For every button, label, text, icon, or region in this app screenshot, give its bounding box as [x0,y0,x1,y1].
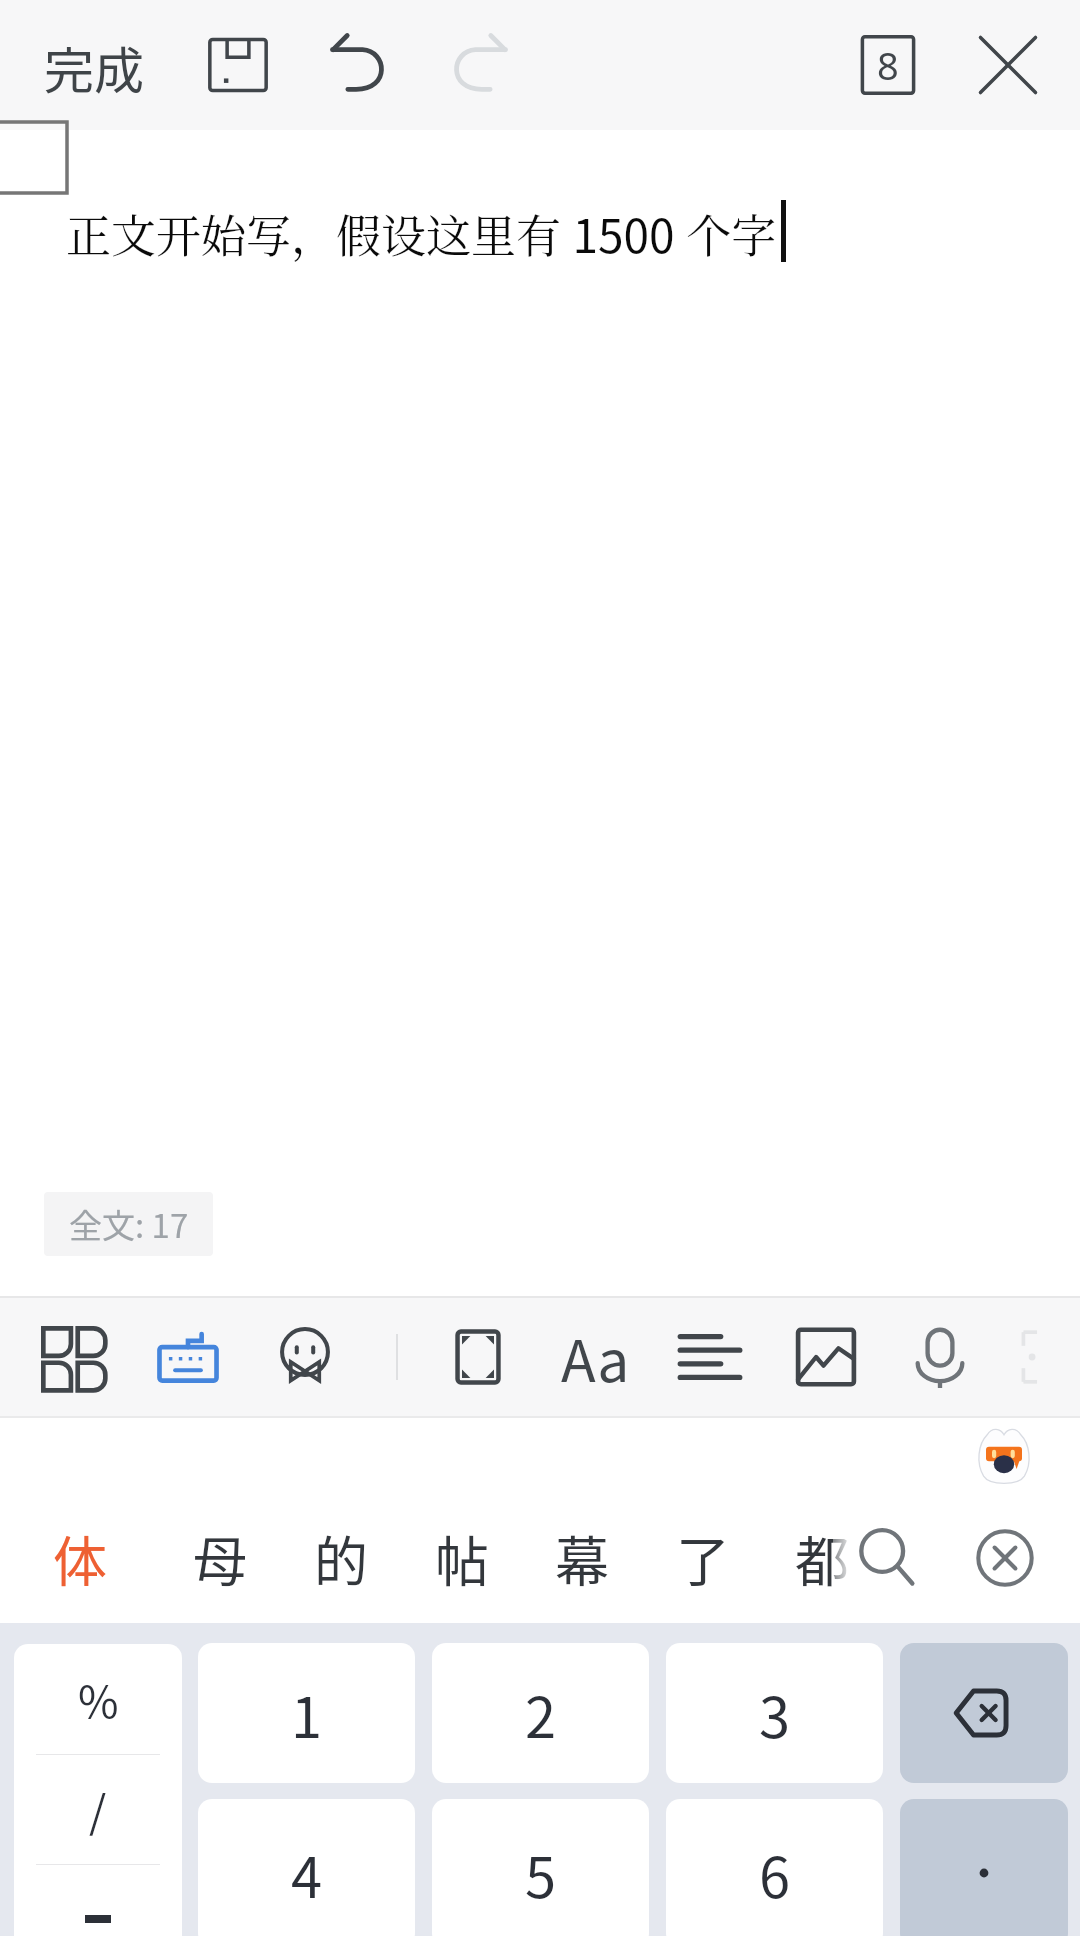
button[interactable]: 母 [160,1498,280,1618]
button[interactable]: Undo [314,0,406,130]
staticText: 了 [676,1519,730,1597]
staticText: 3 [759,1673,791,1754]
button[interactable]: Save [192,0,284,130]
staticText: 5 [525,1833,557,1914]
button[interactable]: 全文: 17 [44,1192,213,1256]
button[interactable]: Panels [14,1298,130,1416]
button[interactable]: Document body [0,130,1080,1296]
staticText: 8 [877,39,899,91]
button[interactable]: 5 [432,1799,649,1936]
staticText: 2 [525,1673,557,1754]
staticText: 6 [759,1833,791,1914]
button[interactable]: Search [833,1498,943,1618]
staticText: 全文: 17 [69,1200,189,1248]
staticText: 1 [291,1673,323,1754]
button[interactable]: Redo [432,0,524,130]
button[interactable]: Aa [537,1298,653,1416]
staticText: 4 [291,1833,323,1914]
button[interactable]: Close [962,0,1054,130]
button[interactable]: 4 [198,1799,415,1936]
button[interactable]: Period [900,1799,1068,1936]
button[interactable]: % [14,1644,182,1936]
staticText: 的 [314,1519,368,1597]
button[interactable]: 1 [198,1643,415,1783]
button[interactable]: 帖 [402,1498,522,1618]
staticText: 帖 [435,1519,489,1597]
staticText: 体 [53,1519,107,1597]
button[interactable]: Voice input [882,1298,998,1416]
button[interactable]: Emoji [247,1298,363,1416]
button[interactable]: Input method [974,1427,1034,1487]
button[interactable]: 6 [666,1799,883,1936]
staticText: 母 [193,1519,247,1597]
button[interactable]: Backspace [900,1643,1068,1783]
button[interactable]: Insert image [768,1298,884,1416]
button[interactable]: Page count [842,0,934,130]
button[interactable]: Full screen [420,1298,536,1416]
button[interactable]: 了 [643,1498,763,1618]
button[interactable]: 3 [666,1643,883,1783]
staticText: 正文开始写，假设这里有 1500 个字 [66,200,777,267]
staticText: 完成 [44,31,144,103]
button[interactable]: 幕 [522,1498,642,1618]
button[interactable]: Keyboard [130,1298,246,1416]
staticText: 都 [795,1519,849,1597]
button[interactable]: 都 [762,1498,882,1618]
staticText: Aa [561,1316,630,1399]
staticText: / [89,1777,107,1841]
button[interactable]: Align [652,1298,768,1416]
button[interactable]: 的 [281,1498,401,1618]
staticText: 幕 [555,1519,609,1597]
button[interactable]: 体 [20,1498,140,1618]
button[interactable]: 2 [432,1643,649,1783]
button[interactable]: Clear [950,1498,1060,1618]
staticText: % [78,1667,119,1731]
button[interactable]: 完成 [18,4,170,130]
